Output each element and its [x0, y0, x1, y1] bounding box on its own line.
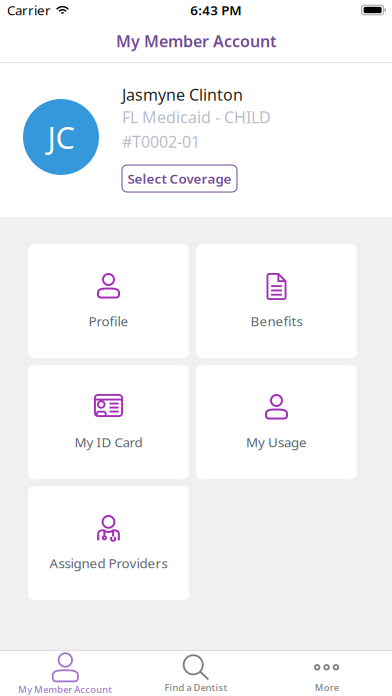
button[interactable]: My Usage	[196, 365, 357, 479]
button[interactable]: More	[261, 651, 392, 696]
staticText: Assigned Providers	[49, 554, 167, 572]
staticText: My Member Account	[18, 683, 112, 696]
staticText: FL Medicaid - CHILD	[122, 106, 271, 128]
staticText: 6:43 PM	[190, 1, 241, 19]
button[interactable]: Benefits	[196, 244, 357, 358]
button[interactable]: Find a Dentist	[131, 651, 261, 696]
staticText: My Usage	[246, 433, 307, 451]
staticText: My ID Card	[74, 433, 142, 451]
staticText: #T0002-01	[122, 131, 200, 152]
staticText: Select Coverage	[127, 170, 231, 187]
staticText: Find a Dentist	[164, 681, 227, 694]
staticText: Carrier	[7, 1, 51, 19]
button[interactable]: Profile	[28, 244, 189, 358]
button[interactable]: Assigned Providers	[28, 486, 189, 600]
staticText: Jasmyne Clinton	[122, 84, 243, 105]
button[interactable]: My Member Account	[0, 651, 131, 696]
staticText: JC	[47, 117, 74, 157]
button[interactable]: Select Coverage	[122, 165, 237, 192]
staticText: More	[315, 681, 339, 694]
staticText: My Member Account	[116, 30, 276, 52]
staticText: Profile	[88, 312, 128, 330]
staticText: Benefits	[250, 312, 302, 330]
button[interactable]: My ID Card	[28, 365, 189, 479]
